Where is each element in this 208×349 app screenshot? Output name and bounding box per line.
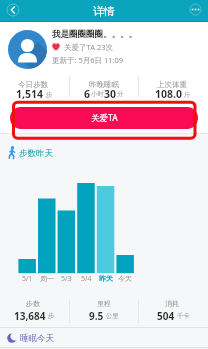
staticText: 步 xyxy=(44,90,53,99)
staticText: 昨晚睡眠 xyxy=(89,80,119,89)
staticText: 我是圈圈圈圈 xyxy=(52,29,103,40)
staticText: 5/3 xyxy=(61,274,72,284)
staticText: 5/1 xyxy=(22,274,33,284)
button[interactable]: 睡眠今天 xyxy=(0,328,208,347)
staticText: 分 xyxy=(117,90,124,98)
staticText: 今日步数 xyxy=(18,80,48,89)
staticText: 周一 xyxy=(40,274,54,283)
staticText: 关爱TA xyxy=(91,112,118,124)
staticText: 步 xyxy=(46,311,55,320)
staticText: 详情 xyxy=(93,4,115,18)
staticText: 里程 xyxy=(97,299,111,308)
button[interactable]: 我是圈圈圈圈 xyxy=(0,22,208,70)
staticText: 5/4 xyxy=(81,274,92,284)
staticText: 1,514 xyxy=(16,87,44,101)
staticText: 504 xyxy=(157,309,175,322)
staticText: 千卡 xyxy=(175,311,190,320)
staticText: 小时 xyxy=(91,90,104,98)
button[interactable] xyxy=(4,1,22,19)
staticText: 6 xyxy=(84,87,91,101)
staticText: 关爱了TA 23次 xyxy=(64,42,113,52)
staticText: 更新于: 5月6日 11:09 xyxy=(52,55,124,65)
staticText: 昨天 xyxy=(99,274,113,283)
staticText: 步数昨天 xyxy=(19,148,53,159)
staticText: 今天 xyxy=(118,274,132,283)
button[interactable]: 关爱TA xyxy=(10,107,198,129)
staticText: 步数 xyxy=(26,299,40,308)
staticText: 。。。。 xyxy=(103,29,137,40)
staticText: 9.5 xyxy=(89,309,104,322)
staticText: 108.0 xyxy=(155,87,182,101)
staticText: 30 xyxy=(104,87,117,101)
staticText: 睡眠今天 xyxy=(20,333,54,344)
staticText: 消耗 xyxy=(165,299,179,308)
staticText: 上次体重 xyxy=(157,80,187,89)
staticText: 公里 xyxy=(104,311,119,320)
staticText: 13,684 xyxy=(14,309,46,322)
button[interactable]: 步数昨天 xyxy=(0,140,208,164)
button[interactable] xyxy=(187,1,204,18)
staticText: 斤 xyxy=(182,90,191,99)
